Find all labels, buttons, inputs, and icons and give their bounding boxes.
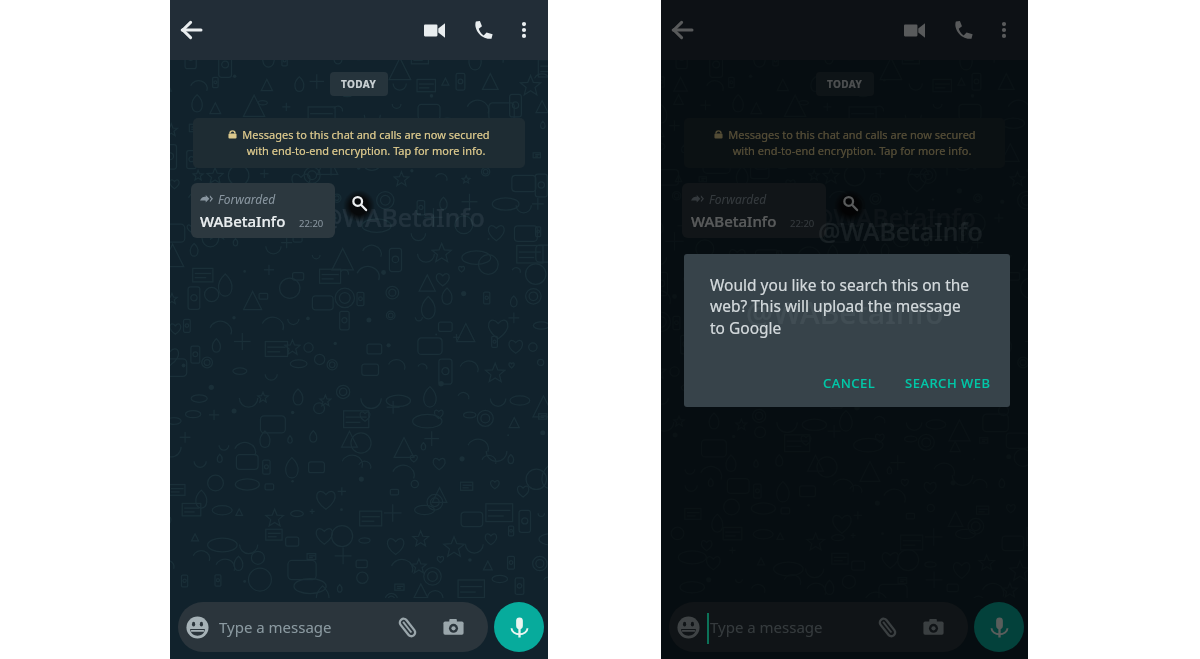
staticText: @WABetaInfo (746, 292, 944, 333)
staticText: Messages to this chat and calls are now … (728, 127, 976, 159)
staticText: @WABetaInfo (811, 200, 976, 234)
button[interactable]: Forwarded (682, 183, 826, 238)
button[interactable]: CANCEL (814, 367, 885, 399)
staticText: Type a message (710, 617, 823, 637)
button[interactable]: Messages to this chat and calls are now … (193, 118, 525, 168)
button[interactable]: Type a message (669, 602, 968, 652)
button[interactable]: More options (506, 12, 542, 48)
staticText: Type a message (219, 617, 332, 637)
staticText: 22:20 (299, 217, 324, 230)
button[interactable]: Voice call (463, 10, 503, 50)
staticText: SEARCH WEB (905, 374, 991, 392)
button[interactable]: Video call (894, 10, 934, 50)
button[interactable]: Forwarded (191, 183, 335, 238)
staticText: TODAY (827, 77, 863, 91)
staticText: WABetaInfo (691, 211, 777, 231)
button[interactable]: Back (661, 9, 703, 51)
button[interactable]: Record voice message (974, 602, 1024, 652)
staticText: Forwarded (709, 191, 767, 207)
button[interactable]: Record voice message (494, 602, 544, 652)
staticText: @WABetaInfo (818, 214, 983, 248)
staticText: @WABetaInfo (320, 200, 485, 234)
button[interactable]: SEARCH WEB (896, 367, 1000, 399)
staticText: CANCEL (823, 374, 876, 392)
button[interactable]: More options (986, 12, 1022, 48)
staticText: TODAY (341, 77, 377, 91)
button[interactable]: Messages to this chat and calls are now … (684, 118, 1005, 168)
button[interactable]: Back (170, 9, 212, 51)
staticText: 22:20 (790, 217, 815, 230)
button[interactable]: Search message on web (343, 190, 375, 222)
staticText: WABetaInfo (200, 211, 286, 231)
button[interactable]: Search message on web (834, 190, 866, 222)
button[interactable]: Voice call (943, 10, 983, 50)
staticText: Messages to this chat and calls are now … (242, 127, 490, 159)
staticText: Forwarded (218, 191, 276, 207)
button[interactable]: Type a message (178, 602, 488, 652)
staticText: Would you like to search this on the web… (710, 274, 970, 339)
button[interactable]: Video call (414, 10, 454, 50)
